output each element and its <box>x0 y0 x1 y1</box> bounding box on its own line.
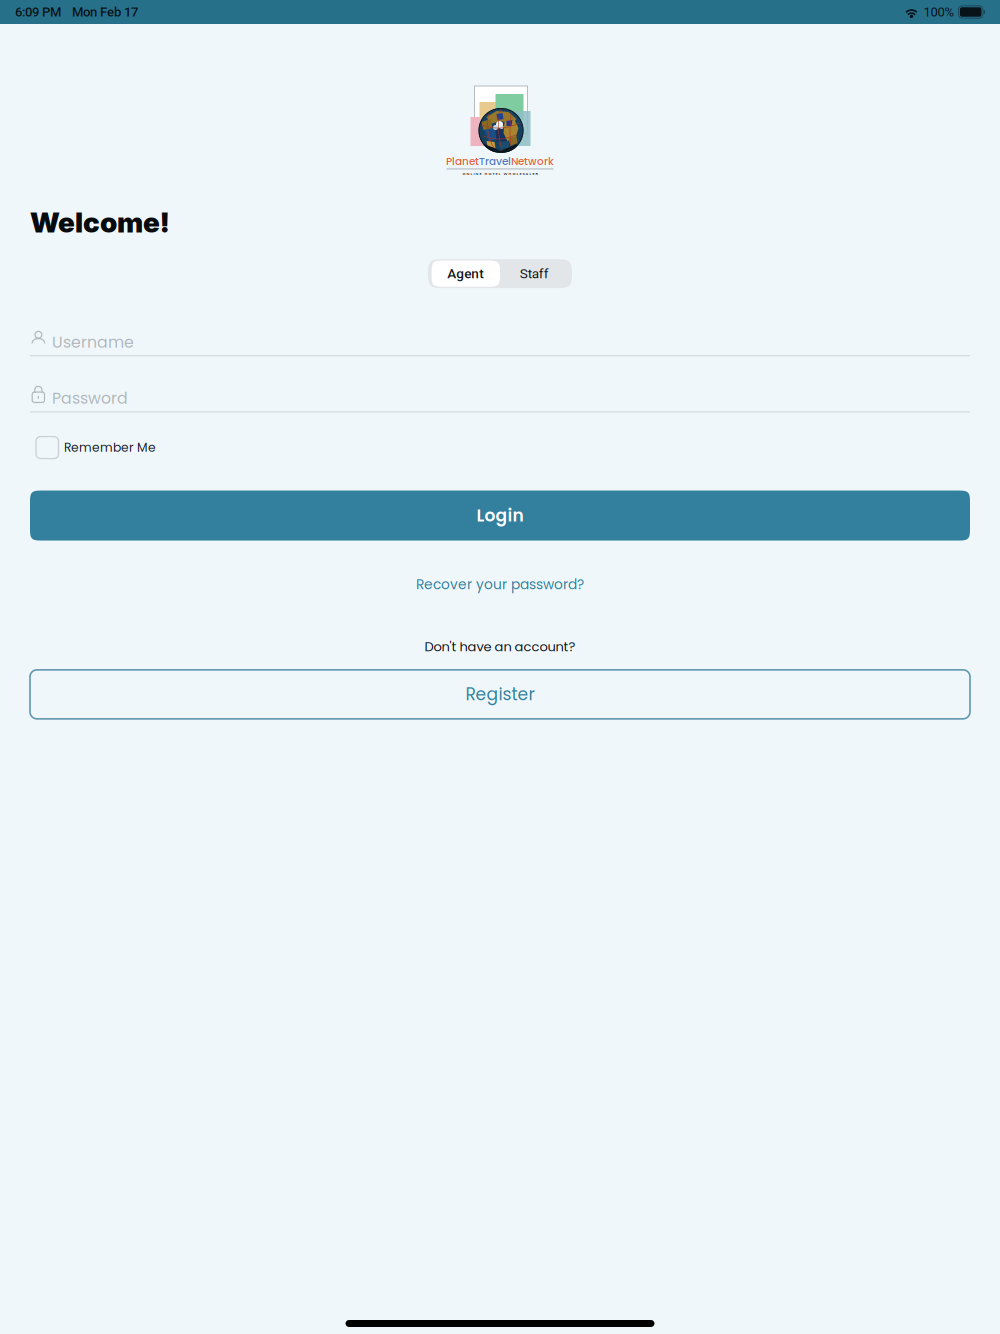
staticText: 100% <box>923 4 954 20</box>
staticText: Mon Feb 17 <box>72 4 138 20</box>
staticText: Welcome! <box>30 205 169 239</box>
button[interactable]: Agent <box>432 261 500 287</box>
staticText: Don't have an account? <box>424 638 575 656</box>
button[interactable]: Password <box>30 385 970 413</box>
staticText: Travel <box>479 154 511 169</box>
staticText: Network <box>511 154 554 169</box>
staticText: Login <box>476 504 523 527</box>
staticText: O N L I N E H O T E L W H O L E S A L E … <box>462 171 537 176</box>
button[interactable]: Staff <box>500 261 568 287</box>
staticText: Username <box>52 331 134 353</box>
button[interactable]: Register <box>30 670 970 719</box>
staticText: Password <box>52 387 128 409</box>
staticText: Staff <box>520 266 549 282</box>
staticText: 6:09 PM <box>15 4 61 20</box>
staticText: Recover your password? <box>416 575 584 594</box>
staticText: Agent <box>447 266 484 282</box>
staticText: Register <box>465 682 534 706</box>
staticText: Remember Me <box>64 439 156 456</box>
button[interactable]: Recover your password? <box>30 572 970 598</box>
button[interactable]: Remember Me <box>30 434 970 462</box>
staticText: Planet <box>446 154 479 169</box>
button[interactable]: Login <box>30 491 970 541</box>
button[interactable]: Username <box>30 329 970 356</box>
